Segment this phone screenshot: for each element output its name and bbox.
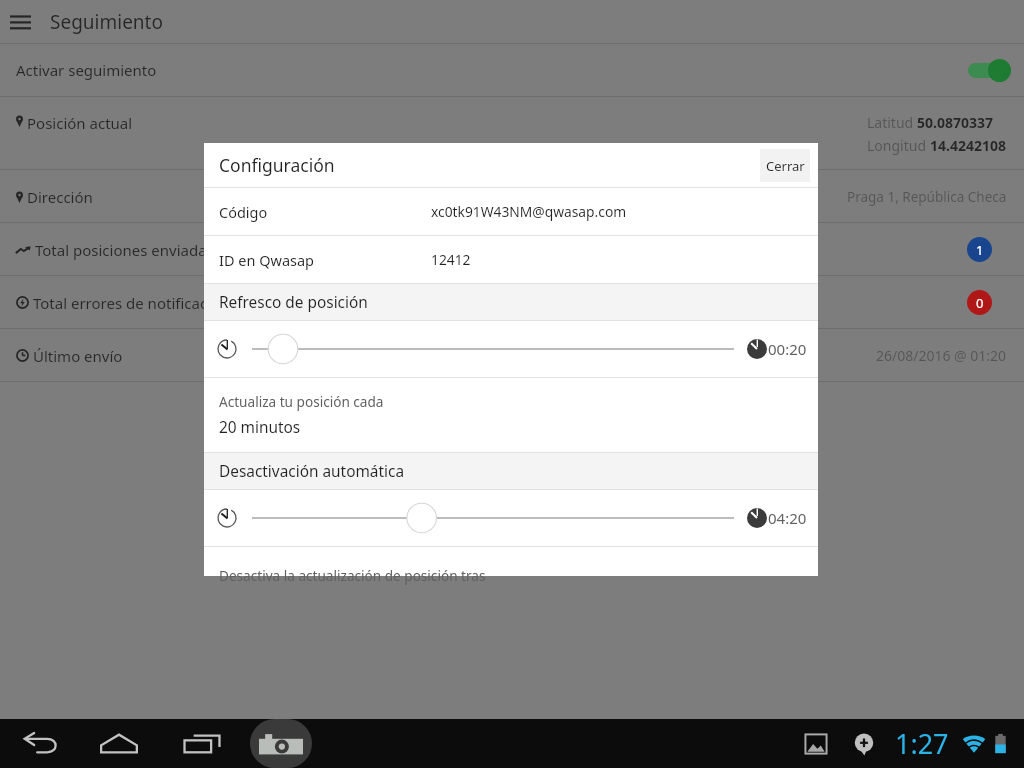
button[interactable]: Total errores de notificación	[0, 276, 1024, 329]
staticText: Posición actual	[27, 113, 133, 133]
staticText: Actualiza tu posición cada	[219, 392, 384, 411]
button[interactable]: Recent apps	[178, 719, 226, 768]
button[interactable]: Dirección	[0, 170, 1024, 223]
staticText: ID en Qwasap	[219, 250, 315, 270]
staticText: 12412	[431, 250, 471, 269]
button[interactable]: Battery	[994, 719, 1007, 768]
button[interactable]: Código	[204, 188, 818, 235]
button[interactable]: 00:20	[204, 321, 818, 377]
button[interactable]: Open navigation drawer	[0, 0, 1024, 43]
staticText: 00:20	[768, 339, 807, 359]
button[interactable]: Posición actual	[0, 97, 1024, 170]
staticText: Praga 1, República Checa	[847, 188, 1007, 206]
button[interactable]: Camera	[250, 719, 312, 768]
button[interactable]: Screenshot	[804, 719, 828, 768]
staticText: Longitud	[867, 136, 930, 155]
staticText: Seguimiento	[50, 9, 163, 35]
staticText: Total errores de notificación	[33, 293, 230, 313]
staticText: Dirección	[27, 187, 93, 207]
staticText: 1	[976, 241, 984, 259]
button[interactable]: ID en Qwasap	[204, 236, 818, 283]
staticText: Desactiva la actualización de posición t…	[219, 566, 486, 585]
button[interactable]: Back	[17, 719, 65, 768]
staticText: Total posiciones enviadas	[35, 240, 214, 260]
button[interactable]: Actualiza tu posición cada	[204, 378, 818, 452]
button[interactable]: Add	[853, 719, 875, 768]
staticText: 14.4242108	[930, 136, 1007, 155]
button[interactable]: 04:20	[204, 490, 818, 546]
staticText: Latitud	[867, 113, 917, 132]
staticText: 20 minutos	[219, 417, 301, 438]
staticText: 1:27	[895, 725, 949, 762]
button[interactable]: Último envío	[0, 329, 1024, 382]
button[interactable]: Activar seguimiento	[0, 44, 1024, 96]
staticText: Último envío	[33, 346, 123, 366]
button[interactable]: Wi-Fi	[962, 719, 986, 768]
staticText: Configuración	[219, 153, 335, 177]
button[interactable]: Cerrar	[760, 149, 810, 182]
staticText: Código	[219, 202, 268, 222]
staticText: xc0tk91W43NM@qwasap.com	[431, 202, 627, 221]
staticText: Refresco de posición	[219, 292, 368, 313]
staticText: 26/08/2016 @ 01:20	[876, 346, 1007, 365]
button[interactable]: Open navigation drawer	[0, 0, 41, 43]
staticText: 04:20	[768, 508, 807, 528]
staticText: 50.0870337	[917, 113, 994, 132]
button[interactable]: Total posiciones enviadas	[0, 223, 1024, 276]
staticText: Desactivación automática	[219, 461, 405, 482]
staticText: Cerrar	[766, 157, 805, 175]
button[interactable]: Home	[95, 719, 143, 768]
staticText: 0	[976, 294, 984, 312]
staticText: Activar seguimiento	[16, 60, 157, 80]
